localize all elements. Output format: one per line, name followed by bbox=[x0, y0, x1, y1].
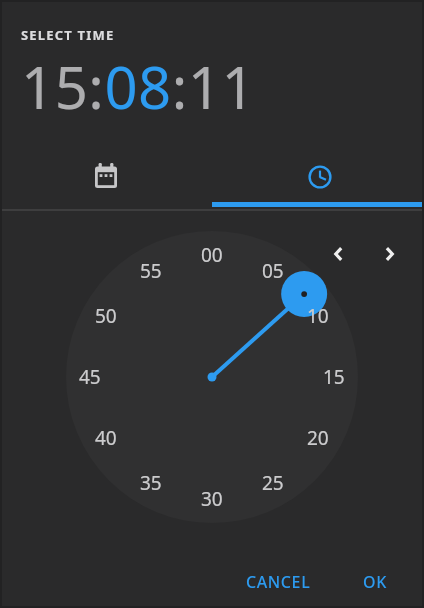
staticText: OK bbox=[363, 571, 387, 593]
staticText: 25 bbox=[262, 470, 284, 496]
staticText: 50 bbox=[95, 303, 117, 329]
staticText: 55 bbox=[140, 258, 162, 284]
staticText: 05 bbox=[262, 258, 284, 284]
staticText: SELECT TIME bbox=[21, 26, 115, 44]
staticText: 00 bbox=[201, 242, 223, 268]
staticText: 15:08:11 bbox=[21, 47, 256, 126]
staticText: 10 bbox=[307, 303, 329, 329]
staticText: CANCEL bbox=[246, 571, 311, 593]
staticText: 30 bbox=[201, 486, 223, 512]
staticText: 20 bbox=[307, 425, 329, 451]
staticText: 45 bbox=[79, 364, 101, 390]
staticText: 40 bbox=[95, 425, 117, 451]
staticText: 35 bbox=[140, 470, 162, 496]
staticText: 15 bbox=[323, 364, 345, 390]
